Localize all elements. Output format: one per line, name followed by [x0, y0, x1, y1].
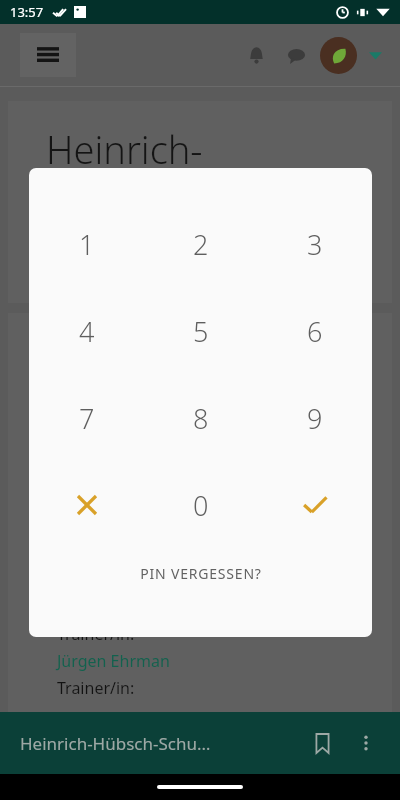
- staticText: 0: [193, 487, 209, 524]
- button[interactable]: 1: [29, 220, 144, 268]
- button[interactable]: 3: [258, 220, 372, 268]
- button[interactable]: 5: [144, 307, 258, 355]
- other: Confirm: [299, 489, 331, 521]
- button[interactable]: More options: [344, 721, 388, 765]
- other: Clear: [72, 490, 102, 520]
- staticText: Trainer/in:: [57, 677, 135, 699]
- button[interactable]: 2: [144, 220, 258, 268]
- staticText: 9: [307, 400, 323, 437]
- staticText: Trainer/in:: [57, 623, 135, 645]
- button[interactable]: PIN VERGESSEN?: [29, 551, 372, 595]
- staticText: Heinrich-Hübsch-Schu…: [20, 732, 300, 755]
- staticText: 1: [79, 226, 95, 263]
- staticText: 8: [193, 400, 209, 437]
- staticText: 6: [307, 313, 323, 350]
- button[interactable]: 4: [29, 307, 144, 355]
- button[interactable]: 9: [258, 394, 372, 442]
- button[interactable]: Messages: [276, 35, 316, 75]
- staticText: 13:57: [10, 3, 44, 21]
- button[interactable]: 8: [144, 394, 258, 442]
- button[interactable]: Bookmark: [300, 721, 344, 765]
- button[interactable]: Expand: [360, 40, 390, 70]
- staticText: 7: [79, 400, 95, 437]
- button[interactable]: 7: [29, 394, 144, 442]
- button[interactable]: Clear: [29, 481, 144, 529]
- staticText: 3: [307, 226, 323, 263]
- button[interactable]: 6: [258, 307, 372, 355]
- staticText: 5: [193, 313, 209, 350]
- button[interactable]: 0: [144, 481, 258, 529]
- button[interactable]: Profile: [316, 33, 360, 77]
- staticText: 2: [193, 226, 209, 263]
- staticText: Jürgen Ehrman: [57, 650, 170, 672]
- staticText: 4: [79, 313, 95, 350]
- staticText: PIN VERGESSEN?: [140, 564, 262, 583]
- button[interactable]: Menu: [20, 33, 76, 77]
- button[interactable]: Notifications: [236, 35, 276, 75]
- button[interactable]: Confirm: [258, 481, 372, 529]
- staticText: Heinrich-: [46, 123, 203, 175]
